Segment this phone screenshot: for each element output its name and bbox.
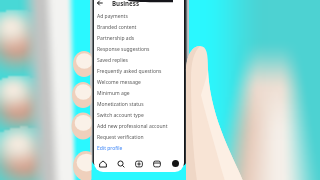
button[interactable]: Home	[94, 155, 112, 172]
button[interactable]: Create	[130, 155, 148, 172]
staticText: Welcome message	[97, 79, 141, 86]
button[interactable]: Ad payments	[97, 11, 184, 22]
staticText: Ad payments	[97, 13, 128, 20]
button[interactable]: Welcome message	[97, 77, 184, 88]
button[interactable]: Response suggestions	[97, 44, 184, 55]
button[interactable]: Back	[95, 0, 104, 7]
staticText: Frequently asked questions	[97, 68, 162, 75]
staticText: Add new professional account	[97, 123, 168, 130]
button[interactable]: Request verification	[97, 132, 184, 143]
button[interactable]: Saved replies	[97, 55, 184, 66]
button[interactable]: Frequently asked questions	[97, 66, 184, 77]
button[interactable]: Switch account type	[97, 110, 184, 121]
button[interactable]: Minimum age	[97, 88, 184, 99]
button[interactable]: Search	[112, 155, 130, 172]
button[interactable]: Monetization status	[97, 99, 184, 110]
staticText: Partnership ads	[97, 35, 135, 42]
staticText: Minimum age	[97, 90, 130, 97]
button[interactable]: Edit profile	[97, 143, 184, 154]
button[interactable]: Reels	[148, 155, 166, 172]
staticText: Response suggestions	[97, 46, 150, 53]
button[interactable]: Profile	[166, 155, 184, 172]
staticText: Branded content	[97, 24, 137, 31]
button[interactable]: Partnership ads	[97, 33, 184, 44]
staticText: Business	[112, 0, 140, 7]
staticText: Request verification	[97, 134, 144, 141]
staticText: Monetization status	[97, 101, 144, 108]
staticText: Switch account type	[97, 112, 144, 119]
button[interactable]: Add new professional account	[97, 121, 184, 132]
staticText: Saved replies	[97, 57, 128, 64]
staticText: Edit profile	[97, 145, 123, 152]
button[interactable]: Branded content	[97, 22, 184, 33]
